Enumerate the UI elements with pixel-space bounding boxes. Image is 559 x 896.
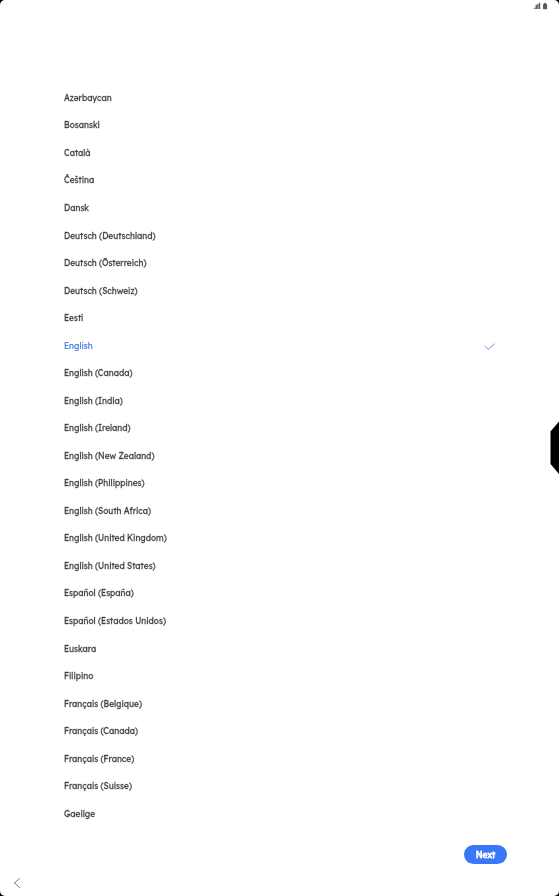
staticText: Deutsch (Schweiz)	[64, 286, 138, 296]
button[interactable]: English (South Africa)	[0, 497, 559, 525]
staticText: Español (Estados Unidos)	[64, 616, 166, 626]
button[interactable]: Español (Estados Unidos)	[0, 607, 559, 635]
staticText: Deutsch (Schweiz)	[64, 286, 138, 296]
staticText: Català	[64, 148, 91, 158]
staticText: Eesti	[64, 313, 84, 323]
button[interactable]: Euskara	[0, 635, 559, 663]
staticText: English	[64, 341, 93, 351]
staticText: Eesti	[64, 313, 84, 323]
staticText: Español (España)	[64, 588, 134, 598]
staticText: English (Philippines)	[64, 478, 145, 488]
button[interactable]: Français (Canada)	[0, 717, 559, 745]
staticText: English (United Kingdom)	[64, 533, 167, 543]
staticText: English (Canada)	[64, 368, 133, 378]
staticText: Dansk	[64, 203, 90, 213]
staticText: English	[64, 341, 93, 351]
staticText: English (Philippines)	[64, 478, 145, 488]
staticText: Bosanski	[64, 120, 100, 130]
staticText: Français (France)	[64, 754, 135, 764]
button[interactable]: Français (Belgique)	[0, 690, 559, 718]
staticText: Čeština	[64, 175, 95, 185]
staticText: Dansk	[64, 203, 90, 213]
button[interactable]: Next	[464, 845, 507, 864]
button[interactable]: Español (España)	[0, 579, 559, 607]
staticText: Azərbaycan	[64, 93, 112, 103]
other: Selected	[484, 343, 495, 351]
button[interactable]: Filipino	[0, 662, 559, 690]
button[interactable]: English	[0, 332, 559, 360]
button[interactable]: Bosanski	[0, 111, 559, 139]
staticText: Français (Canada)	[64, 726, 138, 736]
button[interactable]: Deutsch (Österreich)	[0, 249, 559, 277]
button[interactable]: Français (France)	[0, 745, 559, 773]
button[interactable]: Dansk	[0, 194, 559, 222]
button[interactable]: English (Philippines)	[0, 469, 559, 497]
staticText: English (Ireland)	[64, 423, 131, 433]
staticText: Español (Estados Unidos)	[64, 616, 166, 626]
staticText: Français (France)	[64, 754, 135, 764]
button[interactable]: English (India)	[0, 387, 559, 415]
button[interactable]: Deutsch (Schweiz)	[0, 277, 559, 305]
staticText: Deutsch (Deutschland)	[64, 231, 156, 241]
staticText: Next	[476, 850, 496, 860]
button[interactable]: Français (Suisse)	[0, 772, 559, 800]
button[interactable]: English (Canada)	[0, 359, 559, 387]
button[interactable]: English (New Zealand)	[0, 442, 559, 470]
staticText: Bosanski	[64, 120, 100, 130]
staticText: Azərbaycan	[64, 93, 112, 103]
staticText: Español (España)	[64, 588, 134, 598]
staticText: Čeština	[64, 175, 95, 185]
button[interactable]: English (United Kingdom)	[0, 524, 559, 552]
button[interactable]: Català	[0, 139, 559, 167]
staticText: Français (Belgique)	[64, 699, 142, 709]
staticText: English (New Zealand)	[64, 451, 155, 461]
other: Mobile signal strength	[534, 3, 540, 9]
staticText: English (New Zealand)	[64, 451, 155, 461]
staticText: English (Canada)	[64, 368, 133, 378]
staticText: Deutsch (Deutschland)	[64, 231, 156, 241]
staticText: Euskara	[64, 644, 97, 654]
button[interactable]: English (Ireland)	[0, 414, 559, 442]
staticText: Filipino	[64, 671, 94, 681]
staticText: Next	[476, 850, 496, 860]
button[interactable]: Azərbaycan	[0, 84, 559, 112]
button[interactable]: Eesti	[0, 304, 559, 332]
staticText: Français (Suisse)	[64, 781, 132, 791]
staticText: English (South Africa)	[64, 506, 152, 516]
staticText: Euskara	[64, 644, 97, 654]
staticText: English (India)	[64, 396, 123, 406]
staticText: Català	[64, 148, 91, 158]
staticText: Gaeilge	[64, 809, 96, 819]
staticText: Français (Canada)	[64, 726, 138, 736]
staticText: Deutsch (Österreich)	[64, 258, 147, 268]
button[interactable]: Čeština	[0, 166, 559, 194]
button[interactable]: English (United States)	[0, 552, 559, 580]
button[interactable]: Deutsch (Deutschland)	[0, 222, 559, 250]
button[interactable]: Back	[4, 868, 30, 894]
staticText: English (United States)	[64, 561, 156, 571]
staticText: Français (Suisse)	[64, 781, 132, 791]
other: Power button	[549, 421, 559, 475]
staticText: Filipino	[64, 671, 94, 681]
staticText: English (United States)	[64, 561, 156, 571]
staticText: Deutsch (Österreich)	[64, 258, 147, 268]
staticText: English (South Africa)	[64, 506, 152, 516]
staticText: English (United Kingdom)	[64, 533, 167, 543]
other: Battery	[543, 3, 547, 9]
button[interactable]: Gaeilge	[0, 800, 559, 828]
staticText: Français (Belgique)	[64, 699, 142, 709]
staticText: Gaeilge	[64, 809, 96, 819]
staticText: English (Ireland)	[64, 423, 131, 433]
staticText: English (India)	[64, 396, 123, 406]
